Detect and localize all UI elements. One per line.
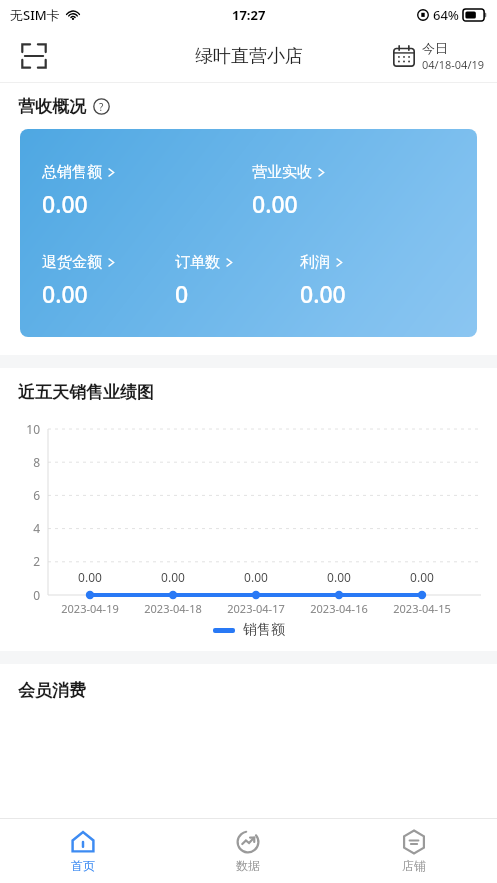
staticText: 营收概况 (18, 96, 86, 117)
staticText: 0.00 (400, 569, 444, 585)
button[interactable]: 退货金额 (42, 253, 175, 309)
button[interactable]: 利润 (300, 253, 477, 309)
button[interactable]: 扫一扫 (14, 36, 54, 76)
staticText: 今日 (422, 40, 448, 56)
staticText: 0.00 (68, 569, 112, 585)
staticText: ? (99, 100, 104, 114)
staticText: 近五天销售业绩图 (18, 382, 154, 403)
staticText: 2023-04-15 (380, 601, 464, 616)
button[interactable]: 总销售额 (42, 163, 252, 219)
staticText: 0 (16, 587, 40, 603)
button[interactable]: 首页 (0, 819, 165, 883)
staticText: 0 (175, 278, 189, 309)
button[interactable]: 总销售额 (20, 129, 477, 337)
staticText: 2023-04-17 (214, 601, 298, 616)
button[interactable]: 订单数 (175, 253, 300, 309)
staticText: 销售额 (243, 621, 285, 639)
staticText: 2023-04-18 (131, 601, 215, 616)
staticText: 6 (16, 487, 40, 503)
staticText: 0.00 (42, 278, 88, 309)
staticText: 订单数 (175, 253, 220, 272)
staticText: 2 (16, 553, 40, 569)
staticText: 退货金额 (42, 253, 102, 272)
staticText: 2023-04-19 (48, 601, 132, 616)
staticText: 店铺 (402, 858, 426, 873)
staticText: 0.00 (151, 569, 195, 585)
staticText: 数据 (236, 858, 260, 873)
staticText: 0.00 (317, 569, 361, 585)
staticText: 8 (16, 454, 40, 470)
button[interactable]: 店铺 (331, 819, 497, 883)
staticText: 利润 (300, 253, 330, 272)
staticText: 首页 (71, 858, 95, 873)
staticText: 0.00 (42, 188, 88, 219)
staticText: 总销售额 (42, 163, 102, 182)
staticText: 绿叶直营小店 (195, 45, 303, 68)
staticText: 无SIM卡 (10, 6, 60, 24)
staticText: 64% (433, 6, 459, 24)
staticText: 4 (16, 520, 40, 536)
button[interactable]: 说明 (93, 98, 110, 115)
staticText: 营业实收 (252, 163, 312, 182)
button[interactable]: 今日 (393, 40, 485, 72)
staticText: 会员消费 (18, 680, 86, 701)
staticText: 10 (16, 421, 40, 437)
staticText: 0.00 (252, 188, 298, 219)
button[interactable]: 营业实收 (252, 163, 477, 219)
staticText: 0.00 (234, 569, 278, 585)
staticText: 17:27 (232, 6, 266, 24)
staticText: 0.00 (300, 278, 346, 309)
staticText: 2023-04-16 (297, 601, 381, 616)
staticText: 04/18-04/19 (422, 57, 485, 72)
button[interactable]: 数据 (165, 819, 331, 883)
